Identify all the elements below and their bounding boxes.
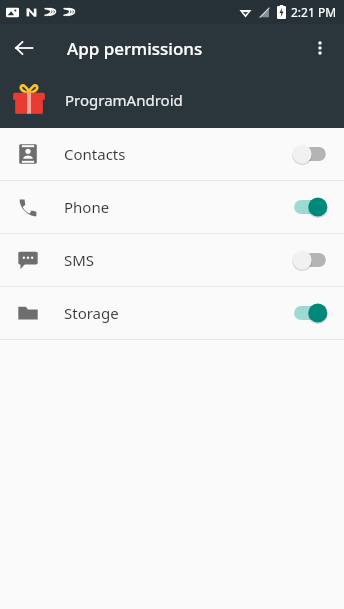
button[interactable]: Contacts permission toggle (282, 130, 338, 178)
button[interactable]: Back (4, 28, 44, 68)
staticText: Phone (64, 197, 282, 217)
staticText: Storage (64, 303, 282, 323)
button[interactable]: Storage (0, 287, 344, 339)
staticText: SMS (64, 250, 282, 270)
button[interactable]: Phone permission toggle (282, 183, 338, 231)
button[interactable]: Phone (0, 181, 344, 233)
button[interactable]: Contacts (0, 128, 344, 180)
staticText: App permissions (67, 37, 203, 60)
button[interactable]: ProgramAndroid (0, 72, 344, 128)
staticText: Contacts (64, 144, 282, 164)
staticText: ProgramAndroid (65, 90, 183, 110)
button[interactable]: Storage permission toggle (282, 289, 338, 337)
button[interactable]: SMS permission toggle (282, 236, 338, 284)
button[interactable]: More options (300, 28, 340, 68)
button[interactable]: SMS (0, 234, 344, 286)
staticText: 2:21 PM (291, 4, 337, 20)
